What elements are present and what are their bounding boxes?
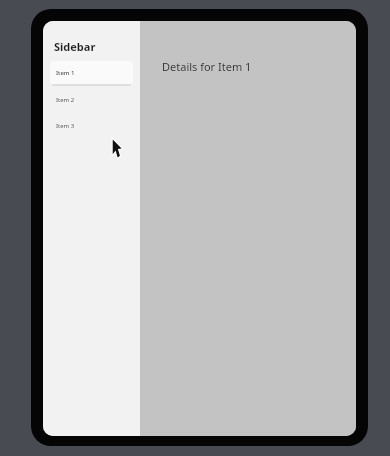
- button[interactable]: Item 3: [50, 119, 133, 133]
- staticText: Sidebar: [54, 39, 96, 54]
- button[interactable]: Item 2: [50, 93, 133, 107]
- staticText: Item 1: [56, 69, 75, 77]
- staticText: Item 3: [56, 122, 75, 130]
- button[interactable]: Item 1: [50, 61, 133, 84]
- staticText: Item 2: [56, 96, 75, 104]
- staticText: Details for Item 1: [162, 59, 252, 74]
